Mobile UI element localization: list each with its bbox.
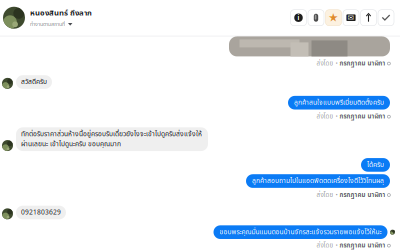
- staticText: ส่งโดย •: [316, 59, 339, 68]
- staticText: ★: [328, 12, 339, 24]
- staticText: ลูกค้าสอบถามไปในแอดพิดตดเครื่องไงดีไว้วิ…: [252, 176, 384, 186]
- button[interactable]: Attachment: [308, 10, 324, 26]
- staticText: กรกฎาคม นาฬิกา: [339, 59, 385, 68]
- staticText: กรกฎาคม นาฬิกา: [339, 190, 385, 200]
- button[interactable]: Mail: [343, 10, 359, 26]
- staticText: 0921803629: [21, 207, 61, 218]
- staticText: ได้ครับ: [367, 160, 384, 170]
- button[interactable]: หนองสินทร์ ถึงลาก: [0, 7, 92, 29]
- staticText: ทักต่อรับราคาส่วนห้างนี้อยู่ครอบรับเดี๋ย…: [21, 129, 202, 149]
- staticText: ส่งโดย •: [316, 190, 339, 200]
- staticText: ส่งโดย •: [316, 241, 339, 250]
- staticText: กรกฎาคม นาฬิกา: [339, 112, 385, 121]
- button[interactable]: Share: [360, 10, 376, 26]
- staticText: หนองสินทร์ ถึงลาก: [30, 7, 92, 19]
- staticText: ลูกค้าสนใจแบบพรีเมี่ยมติดตั้งครับ: [294, 98, 384, 108]
- staticText: ทำงานตามสถานที่: [30, 20, 65, 28]
- staticText: ส่งโดย •: [316, 112, 339, 121]
- staticText: i: [297, 13, 299, 22]
- button[interactable]: Star: [325, 10, 341, 26]
- button[interactable]: Info: [290, 10, 306, 26]
- staticText: ขอบพระคุณมั่นแมนตอนบ้านจักรสะแจ้งรวมรายพ…: [219, 227, 381, 237]
- staticText: ✉: [347, 13, 354, 22]
- staticText: กรกฎาคม นาฬิกา: [339, 241, 385, 250]
- staticText: สวัสดีครับ: [21, 77, 47, 87]
- button[interactable]: Mark done: [378, 10, 394, 26]
